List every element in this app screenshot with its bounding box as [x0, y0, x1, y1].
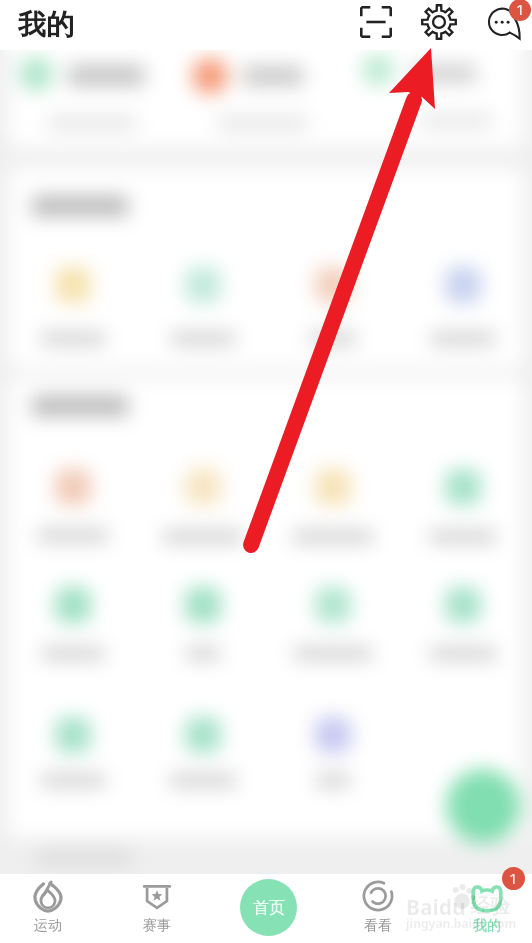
button[interactable]: Settings — [417, 0, 461, 44]
button[interactable]: 赛事 — [113, 874, 201, 943]
staticText: 1 — [509, 868, 518, 888]
staticText: 首页 — [253, 898, 285, 918]
staticText: 我的 — [473, 917, 501, 935]
button[interactable]: 首页 — [240, 879, 297, 936]
staticText: Baidu — [406, 893, 466, 922]
staticText: jingyan.baidu.com — [406, 915, 517, 931]
button[interactable]: Messages — [481, 1, 525, 45]
button[interactable]: 看看 — [334, 874, 422, 943]
button[interactable]: 运动 — [4, 874, 92, 943]
staticText: 经验 — [470, 894, 510, 919]
staticText: 看看 — [364, 917, 392, 935]
staticText: 1 — [516, 0, 525, 19]
staticText: 我的 — [18, 7, 74, 42]
staticText: 赛事 — [143, 917, 171, 935]
button[interactable]: Scan — [354, 0, 398, 44]
button[interactable]: 我的 — [443, 874, 531, 943]
staticText: 运动 — [34, 917, 62, 935]
